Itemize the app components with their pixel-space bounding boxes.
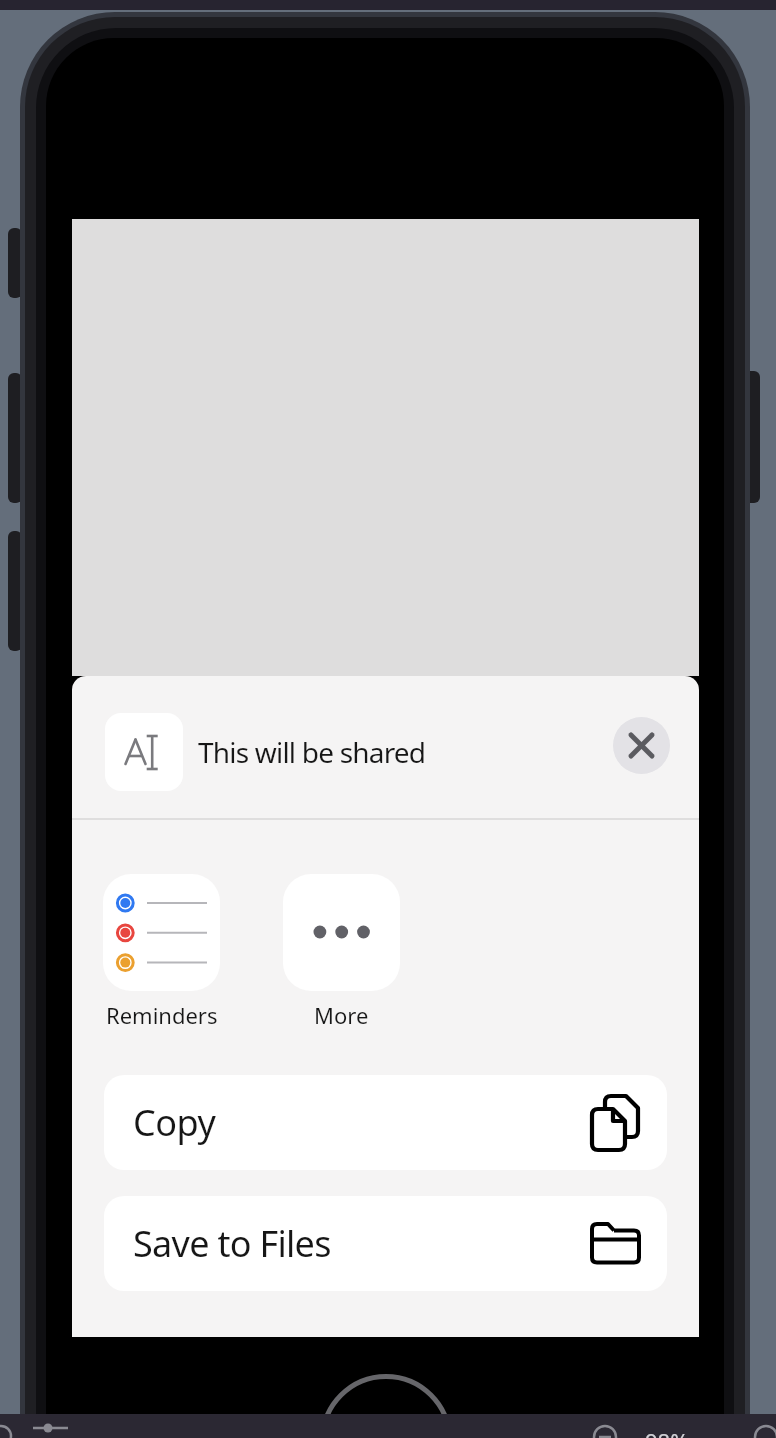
button[interactable] xyxy=(613,717,670,774)
button[interactable]: Reminders xyxy=(103,874,220,1030)
staticText: More xyxy=(314,1000,369,1030)
button[interactable]: More xyxy=(283,874,400,1030)
staticText: Reminders xyxy=(106,1000,218,1030)
staticText: 98% xyxy=(645,1426,689,1438)
staticText: Save to Files xyxy=(133,1219,331,1268)
button[interactable]: Save to Files xyxy=(104,1196,667,1291)
staticText: This will be shared xyxy=(198,733,426,771)
button[interactable]: Copy xyxy=(104,1075,667,1170)
staticText: Copy xyxy=(133,1098,216,1147)
